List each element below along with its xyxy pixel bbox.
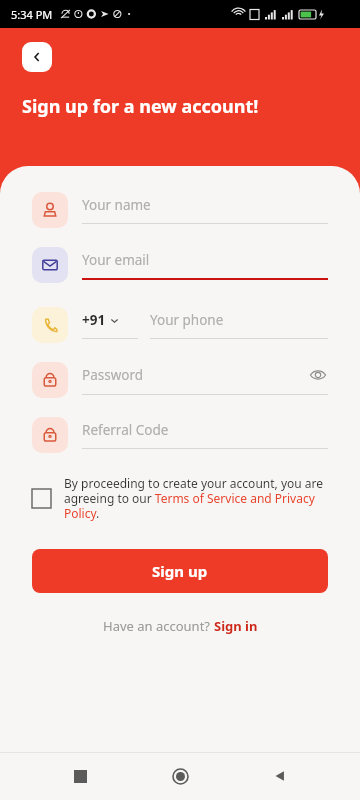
staticText: Your phone xyxy=(150,311,224,329)
staticText: Referral Code xyxy=(82,421,328,439)
staticText: Your name xyxy=(82,196,328,214)
staticText: 5:34 PM xyxy=(11,7,53,22)
staticText: Sign up xyxy=(152,561,208,581)
staticText: Your email xyxy=(82,251,328,269)
button[interactable]: Have an account? xyxy=(0,617,360,635)
button[interactable]: Recent apps xyxy=(60,756,100,796)
staticText: Sign up for a new account! xyxy=(22,94,259,119)
button[interactable]: By proceeding to create your account, yo… xyxy=(32,475,326,521)
button[interactable]: Your email xyxy=(32,247,328,283)
button[interactable]: Back xyxy=(260,756,300,796)
button[interactable]: Password xyxy=(32,362,328,398)
button[interactable]: Sign up xyxy=(32,549,328,593)
button[interactable]: Your name xyxy=(32,192,328,228)
staticText: Sign in xyxy=(214,617,258,635)
staticText: Password xyxy=(82,366,308,384)
button[interactable]: Back xyxy=(22,42,52,72)
staticText: +91 xyxy=(82,311,106,329)
button[interactable]: Referral Code xyxy=(32,417,328,453)
staticText: By proceeding to create your account, yo… xyxy=(64,475,326,521)
button[interactable]: +91 xyxy=(32,307,328,343)
button[interactable]: Home xyxy=(160,756,200,796)
button[interactable]: Show password xyxy=(308,365,328,385)
staticText: Have an account? xyxy=(103,617,214,635)
